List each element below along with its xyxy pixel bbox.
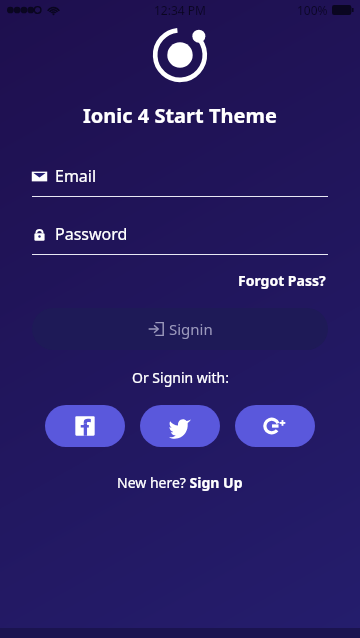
staticText: Ionic 4 Start Theme	[83, 102, 277, 129]
button[interactable]: Sign in with Facebook	[45, 405, 125, 447]
staticText: Email	[55, 165, 97, 187]
staticText: Forgot Pass?	[238, 271, 326, 290]
staticText: 100%	[297, 2, 328, 18]
button[interactable]: Email	[32, 165, 328, 197]
button[interactable]: Signin	[32, 308, 328, 350]
button[interactable]: New here? Sign Up	[113, 471, 247, 494]
staticText: Signin	[169, 319, 213, 339]
button[interactable]: Forgot Pass?	[236, 269, 328, 292]
staticText: 12:34 PM	[154, 2, 206, 18]
button[interactable]: Sign in with Twitter	[140, 405, 220, 447]
other: Password	[32, 227, 47, 242]
button[interactable]: Password	[32, 223, 328, 255]
other: Email	[32, 169, 47, 184]
staticText: New here? Sign Up	[117, 473, 243, 492]
staticText: Or Signin with:	[132, 368, 229, 387]
staticText: Password	[55, 223, 128, 245]
button[interactable]: Sign in with Google Plus	[235, 405, 315, 447]
